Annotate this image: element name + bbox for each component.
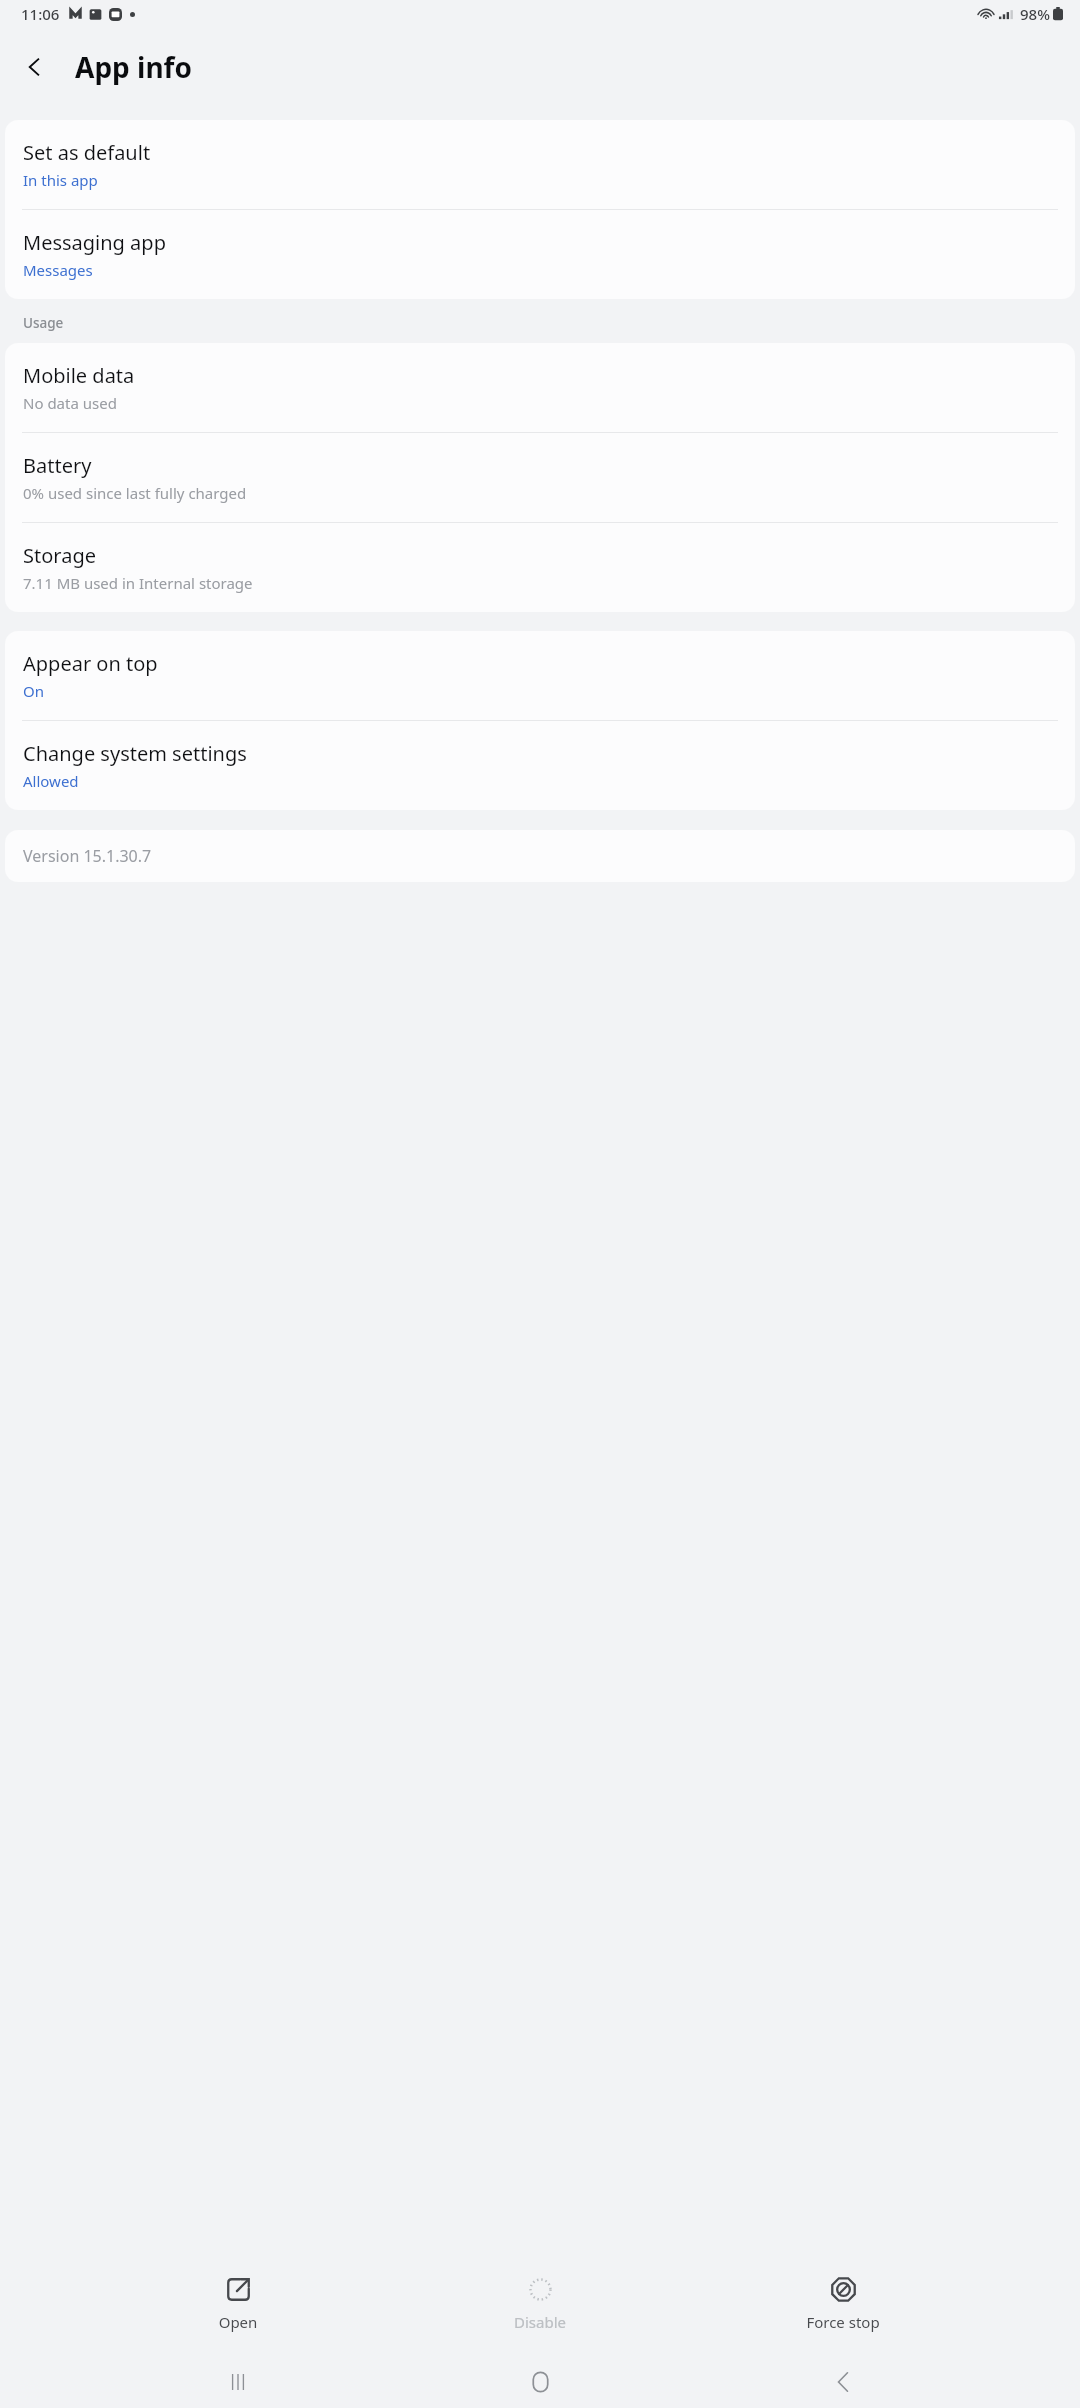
staticText: Battery xyxy=(23,452,92,479)
staticText: Messages xyxy=(23,260,93,280)
staticText: Usage xyxy=(23,314,64,332)
staticText: No data used xyxy=(23,393,117,413)
button[interactable]: Set as default xyxy=(5,120,1075,209)
staticText: Storage xyxy=(23,542,96,569)
staticText: Messaging app xyxy=(23,229,166,256)
staticText: Set as default xyxy=(23,139,151,166)
staticText: Allowed xyxy=(23,771,79,791)
staticText: Disable xyxy=(475,2312,605,2332)
staticText: App info xyxy=(75,48,192,86)
button[interactable]: Home xyxy=(475,2356,605,2408)
staticText: 7.11 MB used in Internal storage xyxy=(23,573,253,593)
staticText: 0% used since last fully charged xyxy=(23,483,247,503)
button[interactable]: Storage xyxy=(5,523,1075,612)
button[interactable]: Force stop xyxy=(778,2270,908,2338)
staticText: Force stop xyxy=(778,2312,908,2332)
staticText: Mobile data xyxy=(23,362,135,389)
staticText: Open xyxy=(173,2312,303,2332)
staticText: Appear on top xyxy=(23,650,158,677)
button[interactable]: Recent apps xyxy=(173,2356,303,2408)
button[interactable]: Back xyxy=(778,2356,908,2408)
staticText: On xyxy=(23,681,44,701)
button[interactable]: Open xyxy=(173,2270,303,2338)
button[interactable]: Version 15.1.30.7 xyxy=(5,830,1075,882)
button[interactable]: Back xyxy=(7,39,63,95)
button[interactable]: Battery xyxy=(5,433,1075,522)
staticText: 11:06 xyxy=(21,4,60,24)
button[interactable]: Mobile data xyxy=(5,343,1075,432)
button[interactable]: Appear on top xyxy=(5,631,1075,720)
staticText: In this app xyxy=(23,170,98,190)
button[interactable]: Messaging app xyxy=(5,210,1075,299)
staticText: Version 15.1.30.7 xyxy=(23,845,152,867)
button[interactable]: Change system settings xyxy=(5,721,1075,810)
staticText: 98% xyxy=(1020,4,1050,24)
button[interactable]: Disable xyxy=(475,2270,605,2338)
staticText: Change system settings xyxy=(23,740,247,767)
